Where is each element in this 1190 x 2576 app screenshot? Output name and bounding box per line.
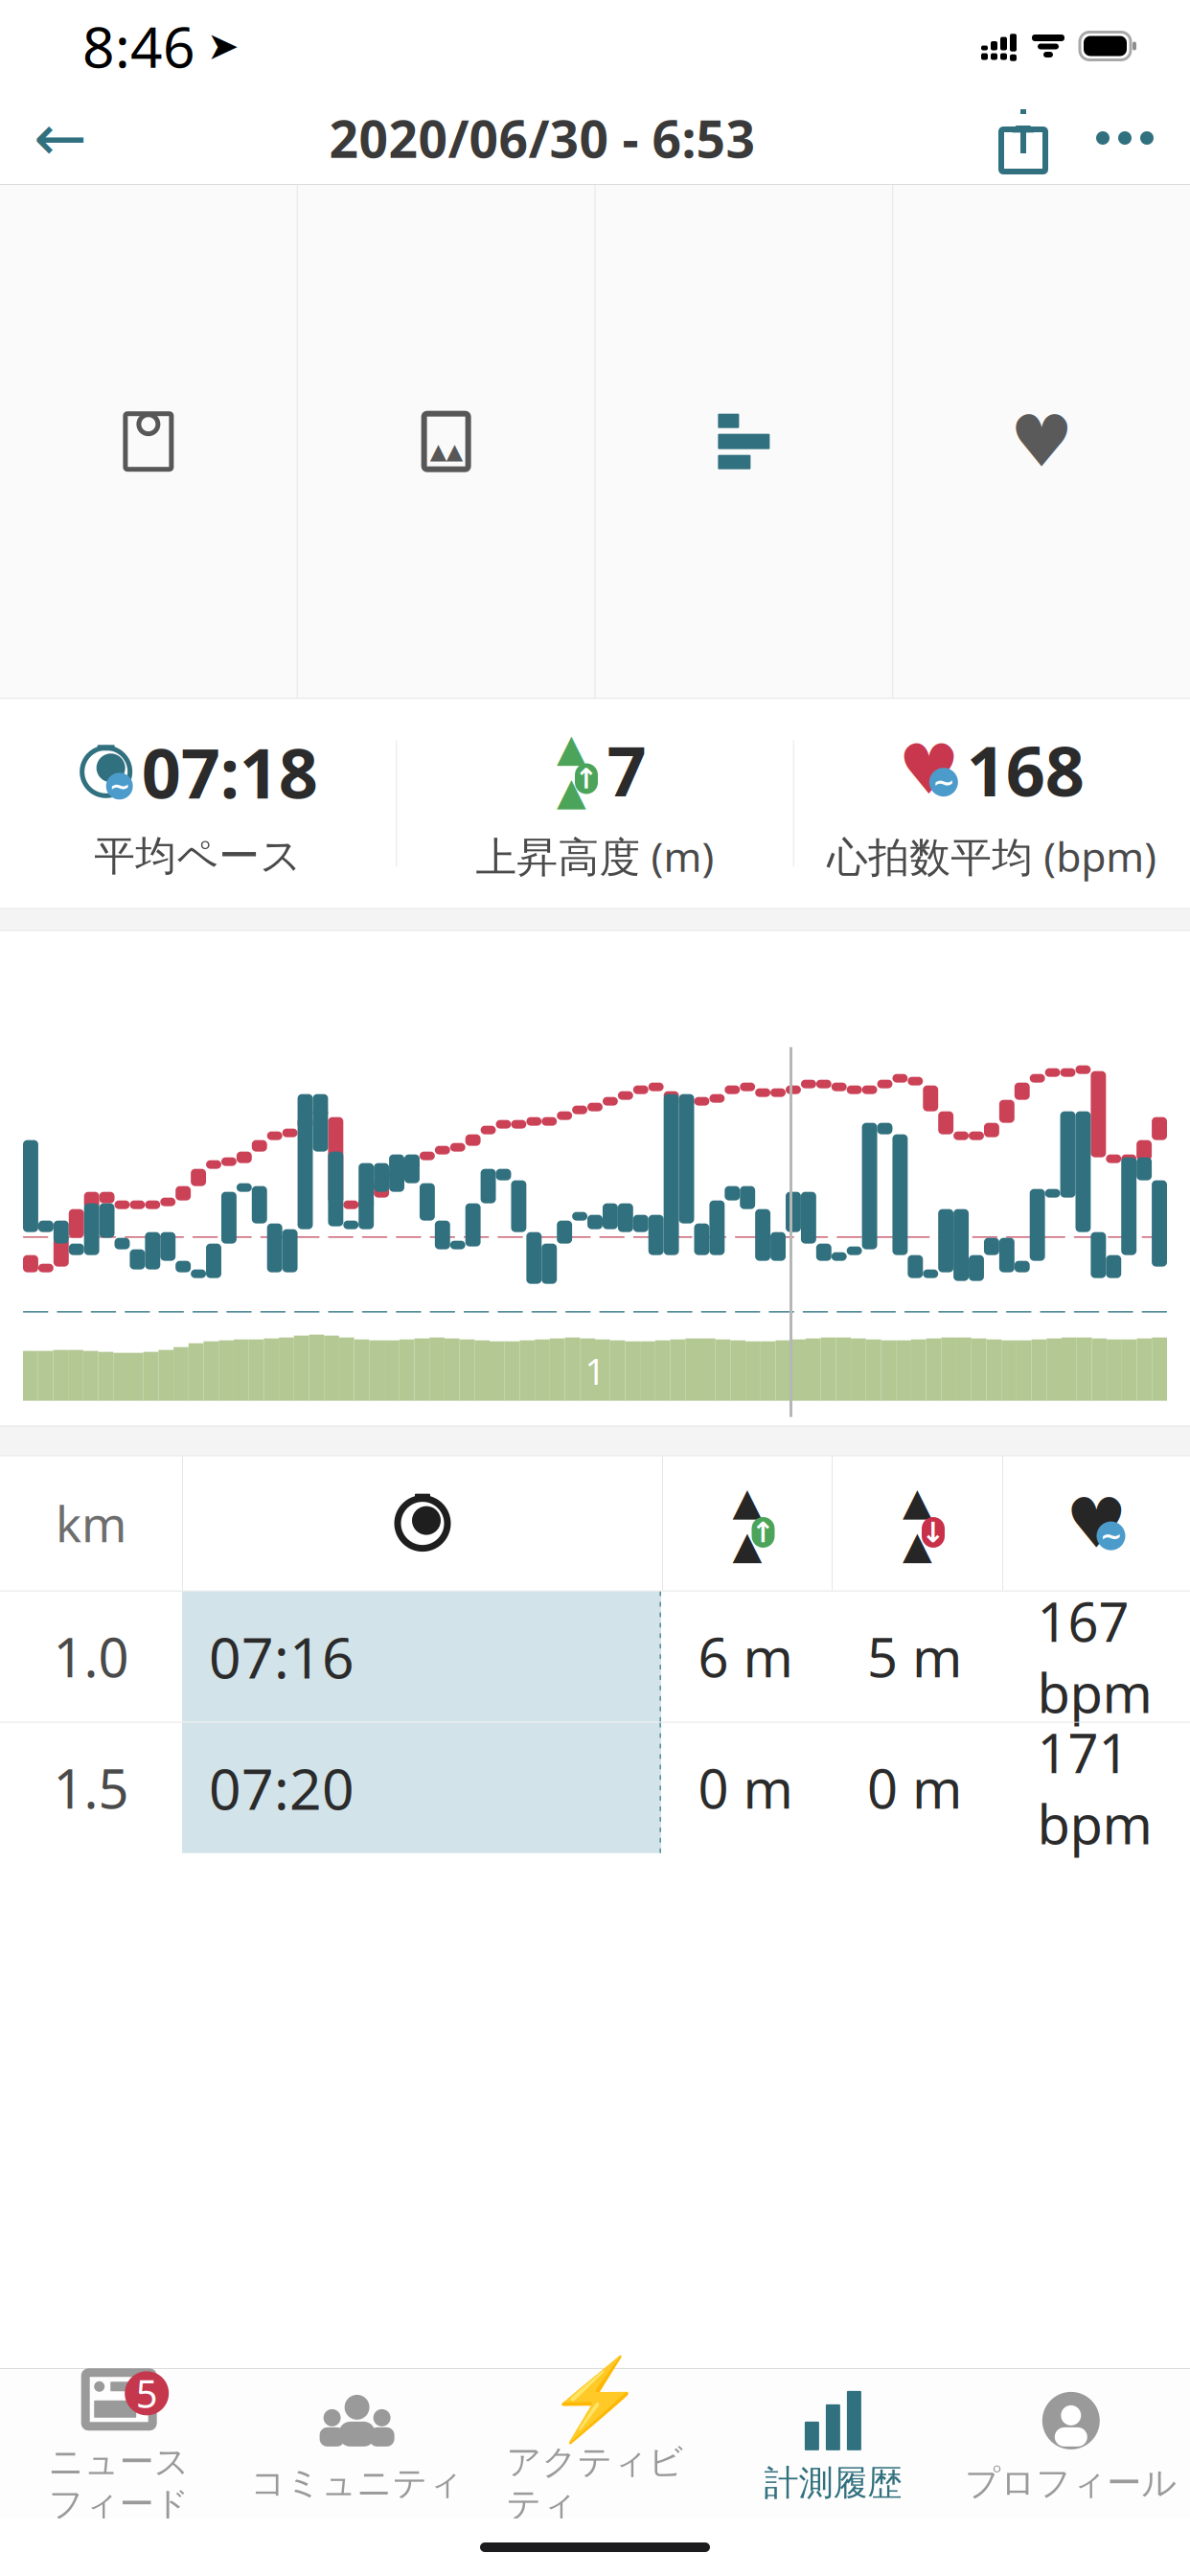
staticText: ▲▲ xyxy=(903,1480,932,1567)
button[interactable]: Heart rate xyxy=(893,376,1190,507)
button[interactable]: Share xyxy=(972,92,1075,184)
staticText: ▲▲ xyxy=(557,726,586,813)
staticText: 1 xyxy=(585,1347,605,1395)
button[interactable]: Photos xyxy=(298,376,595,507)
staticText: 上昇高度 (m) xyxy=(476,829,714,883)
staticText: ▲ xyxy=(1012,103,1034,135)
staticText: ⚡ xyxy=(546,2354,644,2445)
staticText: ニュースフィード xyxy=(49,2441,189,2525)
button[interactable]: Map xyxy=(0,376,297,507)
staticText: ♥ xyxy=(1009,401,1074,482)
staticText: 1.5 xyxy=(53,1752,129,1824)
staticText: 計測履歴 xyxy=(764,2462,902,2504)
button[interactable]: Splits xyxy=(595,376,892,507)
staticText: ▲▲ xyxy=(430,439,462,464)
staticText: 0 m xyxy=(867,1752,962,1824)
staticText: 167 bpm xyxy=(1037,1585,1152,1728)
staticText: 2020/06/30 - 6:53 xyxy=(329,104,755,172)
staticText: ↑ xyxy=(574,763,598,795)
staticText: 7 xyxy=(607,724,646,816)
staticText: ∼ xyxy=(933,767,955,797)
staticText: 07:16 xyxy=(209,1619,355,1694)
staticText: ♥ xyxy=(1065,1484,1128,1563)
button[interactable]: 5 xyxy=(0,2375,238,2518)
staticText: コミュニティ xyxy=(251,2462,463,2504)
staticText: 0 m xyxy=(698,1752,793,1824)
staticText: 1.0 xyxy=(53,1621,129,1692)
button[interactable]: Back xyxy=(8,92,113,184)
staticText: 07:20 xyxy=(209,1751,355,1825)
staticText: 心拍数平均 (bpm) xyxy=(827,829,1157,883)
staticText: ▲▲ xyxy=(732,1480,762,1567)
staticText: 171 bpm xyxy=(1037,1717,1152,1859)
staticText: ∼ xyxy=(1100,1521,1122,1551)
staticText: ∼ xyxy=(109,772,130,801)
staticText: 8:46 xyxy=(82,9,195,83)
staticText: 5 m xyxy=(867,1621,962,1692)
button[interactable]: プロフィール xyxy=(952,2375,1190,2518)
button[interactable]: 1.5 xyxy=(0,1723,1190,1853)
staticText: プロフィール xyxy=(965,2462,1177,2504)
staticText: ↓ xyxy=(921,1516,945,1548)
button[interactable]: コミュニティ xyxy=(238,2375,476,2518)
button[interactable]: More options xyxy=(1075,92,1175,184)
button[interactable]: ⚡ xyxy=(476,2375,714,2518)
staticText: 6 m xyxy=(698,1621,793,1692)
staticText: ➤ xyxy=(207,24,240,68)
staticText: ← xyxy=(34,102,87,174)
button[interactable]: 1.0 xyxy=(0,1591,1190,1722)
staticText: ↑ xyxy=(751,1516,775,1548)
button[interactable]: 計測履歴 xyxy=(714,2375,952,2518)
staticText: 5 xyxy=(136,2368,158,2419)
staticText: ♥ xyxy=(898,731,960,809)
staticText: 168 xyxy=(967,724,1084,816)
staticText: 平均ペース xyxy=(94,831,302,881)
staticText: アクティビティ xyxy=(506,2441,684,2525)
staticText: km xyxy=(56,1491,126,1556)
staticText: 07:18 xyxy=(142,726,318,818)
